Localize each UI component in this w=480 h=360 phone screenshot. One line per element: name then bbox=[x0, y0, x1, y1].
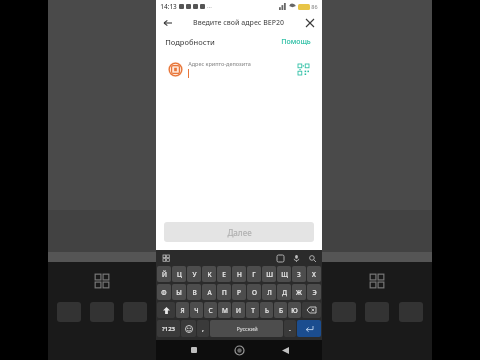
staticText: Щ bbox=[281, 270, 288, 279]
staticText: Введите свой адрес BEP20 bbox=[193, 18, 284, 28]
button[interactable]: Н bbox=[232, 266, 246, 282]
button[interactable]: И bbox=[232, 302, 245, 318]
button[interactable]: Ь bbox=[260, 302, 273, 318]
button[interactable]: Search bbox=[307, 253, 317, 263]
button[interactable]: Backspace bbox=[302, 302, 321, 318]
button[interactable]: Э bbox=[307, 284, 321, 300]
staticText: З bbox=[297, 270, 301, 279]
staticText: Б bbox=[279, 306, 283, 315]
staticText: Й bbox=[162, 270, 167, 279]
button[interactable]: О bbox=[247, 284, 261, 300]
staticText: Подробности bbox=[165, 37, 215, 47]
staticText: И bbox=[236, 306, 241, 315]
staticText: Помощь bbox=[281, 37, 311, 47]
staticText: 86 bbox=[311, 3, 318, 10]
staticText: Ь bbox=[265, 306, 269, 315]
staticText: У bbox=[192, 270, 197, 279]
staticText: Д bbox=[282, 288, 287, 297]
button[interactable]: Recent apps bbox=[186, 342, 202, 358]
button[interactable]: Р bbox=[232, 284, 246, 300]
button[interactable]: Ж bbox=[292, 284, 306, 300]
button[interactable]: . bbox=[284, 320, 296, 337]
staticText: Ч bbox=[194, 306, 199, 315]
button[interactable]: Voice input bbox=[291, 253, 301, 263]
button[interactable]: Й bbox=[157, 266, 171, 282]
staticText: Ш bbox=[266, 270, 273, 279]
button[interactable]: Я bbox=[176, 302, 189, 318]
button[interactable]: Далее bbox=[164, 222, 314, 242]
staticText: П bbox=[222, 288, 227, 297]
staticText: Ц bbox=[177, 270, 182, 279]
button[interactable]: Л bbox=[262, 284, 276, 300]
staticText: Н bbox=[237, 270, 242, 279]
button[interactable]: З bbox=[292, 266, 306, 282]
button[interactable]: Ю bbox=[288, 302, 301, 318]
staticText: Я bbox=[180, 306, 185, 315]
button[interactable]: Close bbox=[303, 16, 317, 30]
button[interactable]: Помощь bbox=[279, 35, 313, 49]
button[interactable]: Х bbox=[307, 266, 321, 282]
button[interactable]: Ф bbox=[157, 284, 171, 300]
button[interactable]: П bbox=[217, 284, 231, 300]
button[interactable]: Т bbox=[246, 302, 259, 318]
button[interactable]: Русский bbox=[210, 320, 283, 337]
button[interactable]: Shift bbox=[157, 302, 175, 318]
staticText: Л bbox=[267, 288, 272, 297]
staticText: К bbox=[207, 270, 212, 279]
button[interactable]: Щ bbox=[277, 266, 291, 282]
staticText: В bbox=[192, 288, 197, 297]
staticText: Г bbox=[252, 270, 256, 279]
staticText: Ю bbox=[291, 306, 298, 315]
staticText: , bbox=[202, 324, 204, 334]
button[interactable]: Emoji bbox=[181, 320, 196, 337]
button[interactable]: У bbox=[187, 266, 201, 282]
button[interactable]: Д bbox=[277, 284, 291, 300]
button[interactable]: М bbox=[218, 302, 231, 318]
button[interactable]: Back bbox=[161, 16, 175, 30]
button[interactable]: Адрес крипто-депозита bbox=[163, 51, 315, 87]
button[interactable]: Ц bbox=[172, 266, 186, 282]
button[interactable]: А bbox=[202, 284, 216, 300]
button[interactable]: Ш bbox=[262, 266, 276, 282]
staticText: . bbox=[289, 324, 291, 334]
staticText: 14:13 bbox=[160, 2, 177, 11]
button[interactable]: Enter bbox=[297, 320, 321, 337]
staticText: Ы bbox=[176, 288, 182, 297]
button[interactable]: С bbox=[204, 302, 217, 318]
staticText: Далее bbox=[227, 227, 252, 238]
button[interactable]: Clipboard bbox=[275, 253, 285, 263]
button[interactable]: Home bbox=[231, 342, 247, 358]
button[interactable]: Ч bbox=[190, 302, 203, 318]
button[interactable]: Scan QR code bbox=[297, 63, 310, 76]
staticText: Ж bbox=[296, 288, 302, 297]
button[interactable]: Е bbox=[217, 266, 231, 282]
staticText: М bbox=[222, 306, 228, 315]
button[interactable]: Keyboard menu bbox=[161, 253, 171, 263]
staticText: Х bbox=[312, 270, 316, 279]
staticText: Ф bbox=[161, 288, 167, 297]
staticText: Адрес крипто-депозита bbox=[188, 60, 251, 67]
button[interactable]: , bbox=[197, 320, 209, 337]
button[interactable]: В bbox=[187, 284, 201, 300]
button[interactable]: К bbox=[202, 266, 216, 282]
staticText: Р bbox=[237, 288, 241, 297]
staticText: Е bbox=[222, 270, 226, 279]
staticText: Э bbox=[312, 288, 317, 297]
staticText: Т bbox=[251, 306, 255, 315]
staticText: А bbox=[207, 288, 212, 297]
button[interactable]: Ы bbox=[172, 284, 186, 300]
button[interactable]: Г bbox=[247, 266, 261, 282]
staticText: Русский bbox=[236, 325, 258, 332]
button[interactable]: Back bbox=[277, 342, 293, 358]
staticText: ··· bbox=[207, 3, 212, 11]
staticText: ?123 bbox=[162, 325, 175, 333]
button[interactable]: ?123 bbox=[157, 320, 180, 337]
button[interactable]: Б bbox=[274, 302, 287, 318]
staticText: С bbox=[208, 306, 213, 315]
staticText: О bbox=[252, 288, 257, 297]
